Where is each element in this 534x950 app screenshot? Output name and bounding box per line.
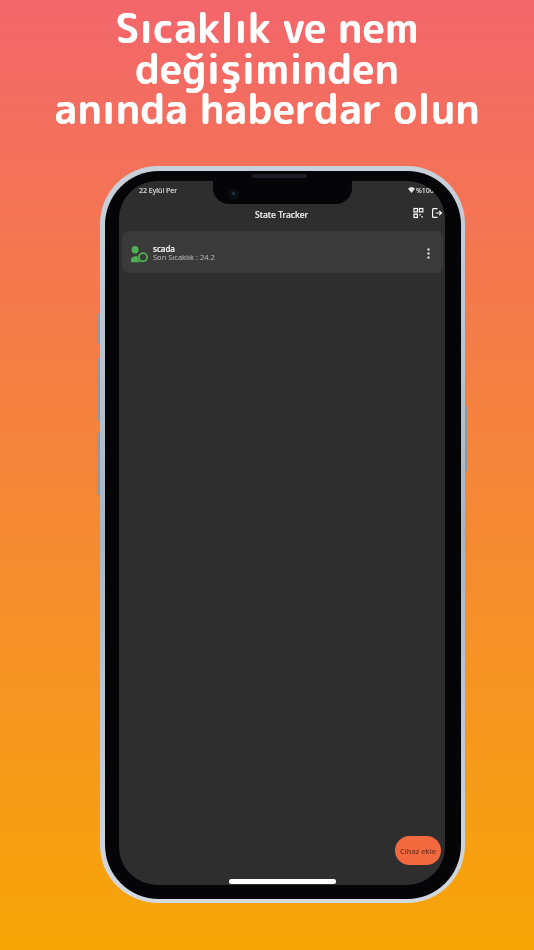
staticText: 22 Eylül Per (139, 186, 178, 196)
button[interactable] (432, 208, 442, 218)
staticText: State Tracker (255, 209, 309, 221)
button[interactable]: scada (122, 231, 443, 273)
button[interactable] (427, 248, 430, 259)
staticText: Sıcaklık ve nem değişiminden anında habe… (0, 0, 534, 137)
staticText: %100 (416, 186, 434, 196)
staticText: Cihaz ekle (400, 846, 437, 856)
staticText: scada (153, 243, 175, 254)
staticText: Son Sıcaklık : 24.2 (153, 252, 215, 262)
button[interactable] (414, 208, 423, 218)
button[interactable]: Cihaz ekle (395, 836, 441, 865)
